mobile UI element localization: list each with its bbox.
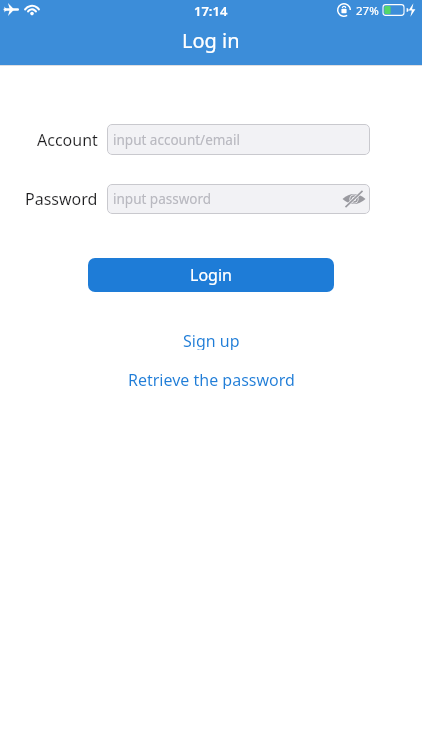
button[interactable]: input password [107, 184, 370, 214]
staticText: Login [190, 264, 232, 286]
staticText: Sign up [183, 330, 240, 350]
staticText: 17:14 [194, 2, 228, 19]
button[interactable]: Login [88, 258, 334, 292]
staticText: input password [113, 190, 212, 208]
button[interactable]: Retrieve the password [128, 369, 295, 389]
staticText: input account/email [113, 131, 240, 149]
staticText: Password [25, 188, 98, 210]
staticText: Retrieve the password [128, 369, 295, 389]
staticText: 27% [356, 3, 379, 19]
button[interactable]: input account/email [107, 124, 370, 155]
staticText: Log in [182, 27, 240, 54]
button[interactable]: Sign up [183, 330, 240, 350]
staticText: Account [37, 129, 98, 151]
